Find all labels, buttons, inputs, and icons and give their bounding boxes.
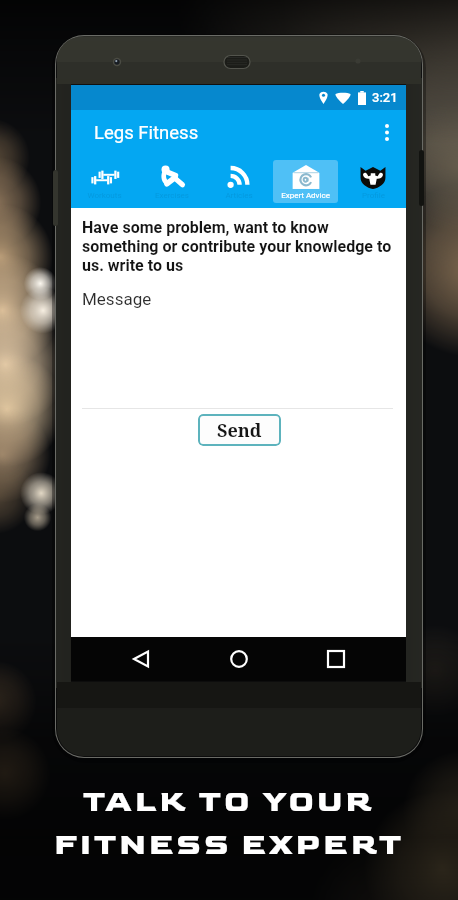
staticText: Legs Fitness <box>94 122 199 144</box>
staticText: Expert Advice <box>281 191 330 200</box>
staticText: Exercises <box>155 191 189 200</box>
staticText: TALK TO YOUR <box>83 783 375 820</box>
button[interactable]: Workouts <box>71 155 138 208</box>
staticText: Profile <box>362 191 385 200</box>
button[interactable]: Expert Advice <box>272 155 339 208</box>
button[interactable]: Articles <box>205 155 272 208</box>
staticText: Articles <box>225 191 253 200</box>
button[interactable]: Send <box>198 414 281 446</box>
staticText: FITNESS EXPERT <box>54 826 405 863</box>
staticText: Workouts <box>87 191 122 200</box>
staticText: Message <box>82 289 152 309</box>
button[interactable]: Exercises <box>138 155 205 208</box>
button[interactable]: Back <box>114 637 168 681</box>
button[interactable]: Home <box>212 637 266 681</box>
button[interactable]: Profile <box>339 155 406 208</box>
staticText: Send <box>217 418 262 443</box>
staticText: 3:21 <box>372 90 398 105</box>
staticText: Have some problem, want to know somethin… <box>82 218 395 275</box>
button[interactable]: Recent apps <box>309 637 363 681</box>
button[interactable]: More options <box>368 110 406 155</box>
